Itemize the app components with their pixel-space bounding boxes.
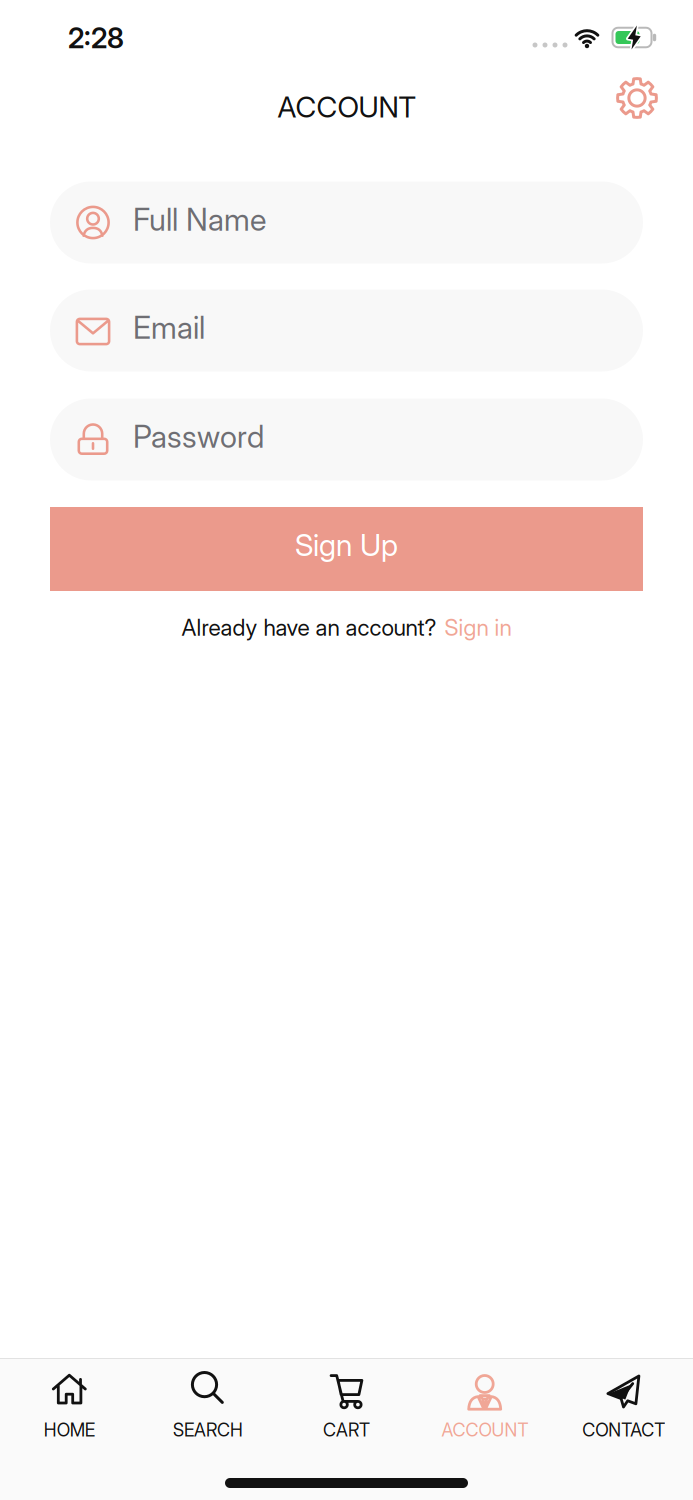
button[interactable]: SEARCH bbox=[139, 1371, 277, 1441]
button[interactable]: Full Name bbox=[50, 181, 643, 263]
staticText: Full Name bbox=[133, 201, 266, 238]
button[interactable]: ACCOUNT bbox=[416, 1371, 554, 1441]
button[interactable]: CART bbox=[277, 1371, 416, 1441]
staticText: CONTACT bbox=[582, 1419, 665, 1441]
button[interactable]: Sign in bbox=[444, 614, 511, 641]
staticText: Already have an account? bbox=[181, 614, 436, 641]
staticText: SEARCH bbox=[173, 1419, 243, 1441]
button[interactable]: Sign Up bbox=[50, 507, 643, 591]
staticText: HOME bbox=[44, 1419, 95, 1441]
button[interactable]: Settings bbox=[616, 77, 658, 119]
staticText: Email bbox=[133, 309, 205, 346]
button[interactable]: CONTACT bbox=[554, 1371, 693, 1441]
button[interactable]: Password bbox=[50, 398, 643, 480]
button[interactable]: Email bbox=[50, 289, 643, 371]
staticText: CART bbox=[323, 1419, 370, 1441]
staticText: ACCOUNT bbox=[277, 90, 415, 124]
staticText: Sign in bbox=[444, 614, 511, 641]
staticText: ACCOUNT bbox=[442, 1419, 529, 1441]
staticText: 2:28 bbox=[68, 21, 124, 55]
staticText: Sign Up bbox=[295, 527, 398, 563]
staticText: Password bbox=[133, 418, 264, 455]
button[interactable]: HOME bbox=[0, 1371, 139, 1441]
